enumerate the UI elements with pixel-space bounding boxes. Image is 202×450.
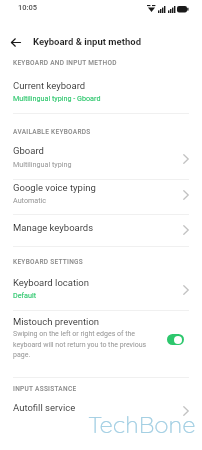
staticText: AVAILABLE KEYBOARDS (13, 128, 91, 136)
staticText: Current keyboard (13, 80, 86, 91)
button[interactable] (0, 76, 202, 110)
staticText: Swiping on the left or right edges of th… (13, 330, 161, 359)
button[interactable] (0, 273, 202, 309)
staticText: Default (13, 291, 36, 299)
button[interactable] (0, 215, 202, 246)
button[interactable] (167, 334, 184, 345)
staticText: Gboard (13, 145, 44, 156)
staticText: INPUT ASSISTANCE (13, 385, 77, 393)
staticText: Multilingual typing - Gboard (13, 94, 101, 102)
staticText: Mistouch prevention (13, 316, 100, 327)
button[interactable] (0, 398, 202, 428)
staticText: Keyboard location (13, 277, 90, 288)
staticText: Autofill service (13, 402, 76, 413)
button[interactable] (0, 311, 202, 367)
button[interactable] (0, 180, 202, 214)
button[interactable] (6, 33, 26, 52)
staticText: Manage keyboards (13, 222, 94, 233)
staticText: Keyboard & input method (33, 36, 141, 47)
button[interactable] (0, 142, 202, 178)
staticText: 10:05 (18, 3, 38, 12)
staticText: Automatic (13, 196, 47, 204)
staticText: Google voice typing (13, 182, 96, 193)
staticText: KEYBOARD AND INPUT METHOD (13, 59, 117, 67)
staticText: TechBone (88, 409, 196, 439)
staticText: KEYBOARD SETTINGS (13, 258, 84, 266)
staticText: Multilingual typing (13, 160, 72, 168)
